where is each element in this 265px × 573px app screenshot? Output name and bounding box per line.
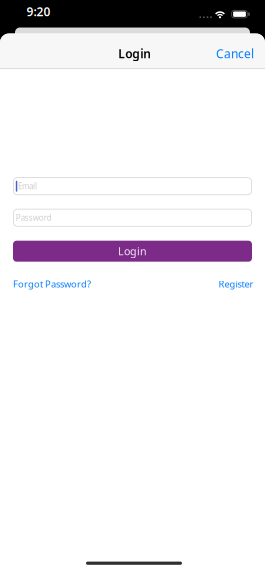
staticText: Cancel [216,45,254,61]
staticText: Login [118,45,151,61]
staticText: Password [16,212,52,223]
button[interactable]: Forgot Password? [13,278,91,290]
button[interactable]: Cancel [216,45,254,61]
staticText: Forgot Password? [13,278,91,290]
staticText: 9:20 [26,4,50,20]
button[interactable]: Login [13,241,252,262]
button[interactable]: Email [13,177,252,195]
staticText: Login [118,244,147,258]
button[interactable]: Register [218,278,253,290]
staticText: Email [18,181,37,191]
button[interactable]: Password [13,209,252,227]
staticText: Register [218,278,253,290]
